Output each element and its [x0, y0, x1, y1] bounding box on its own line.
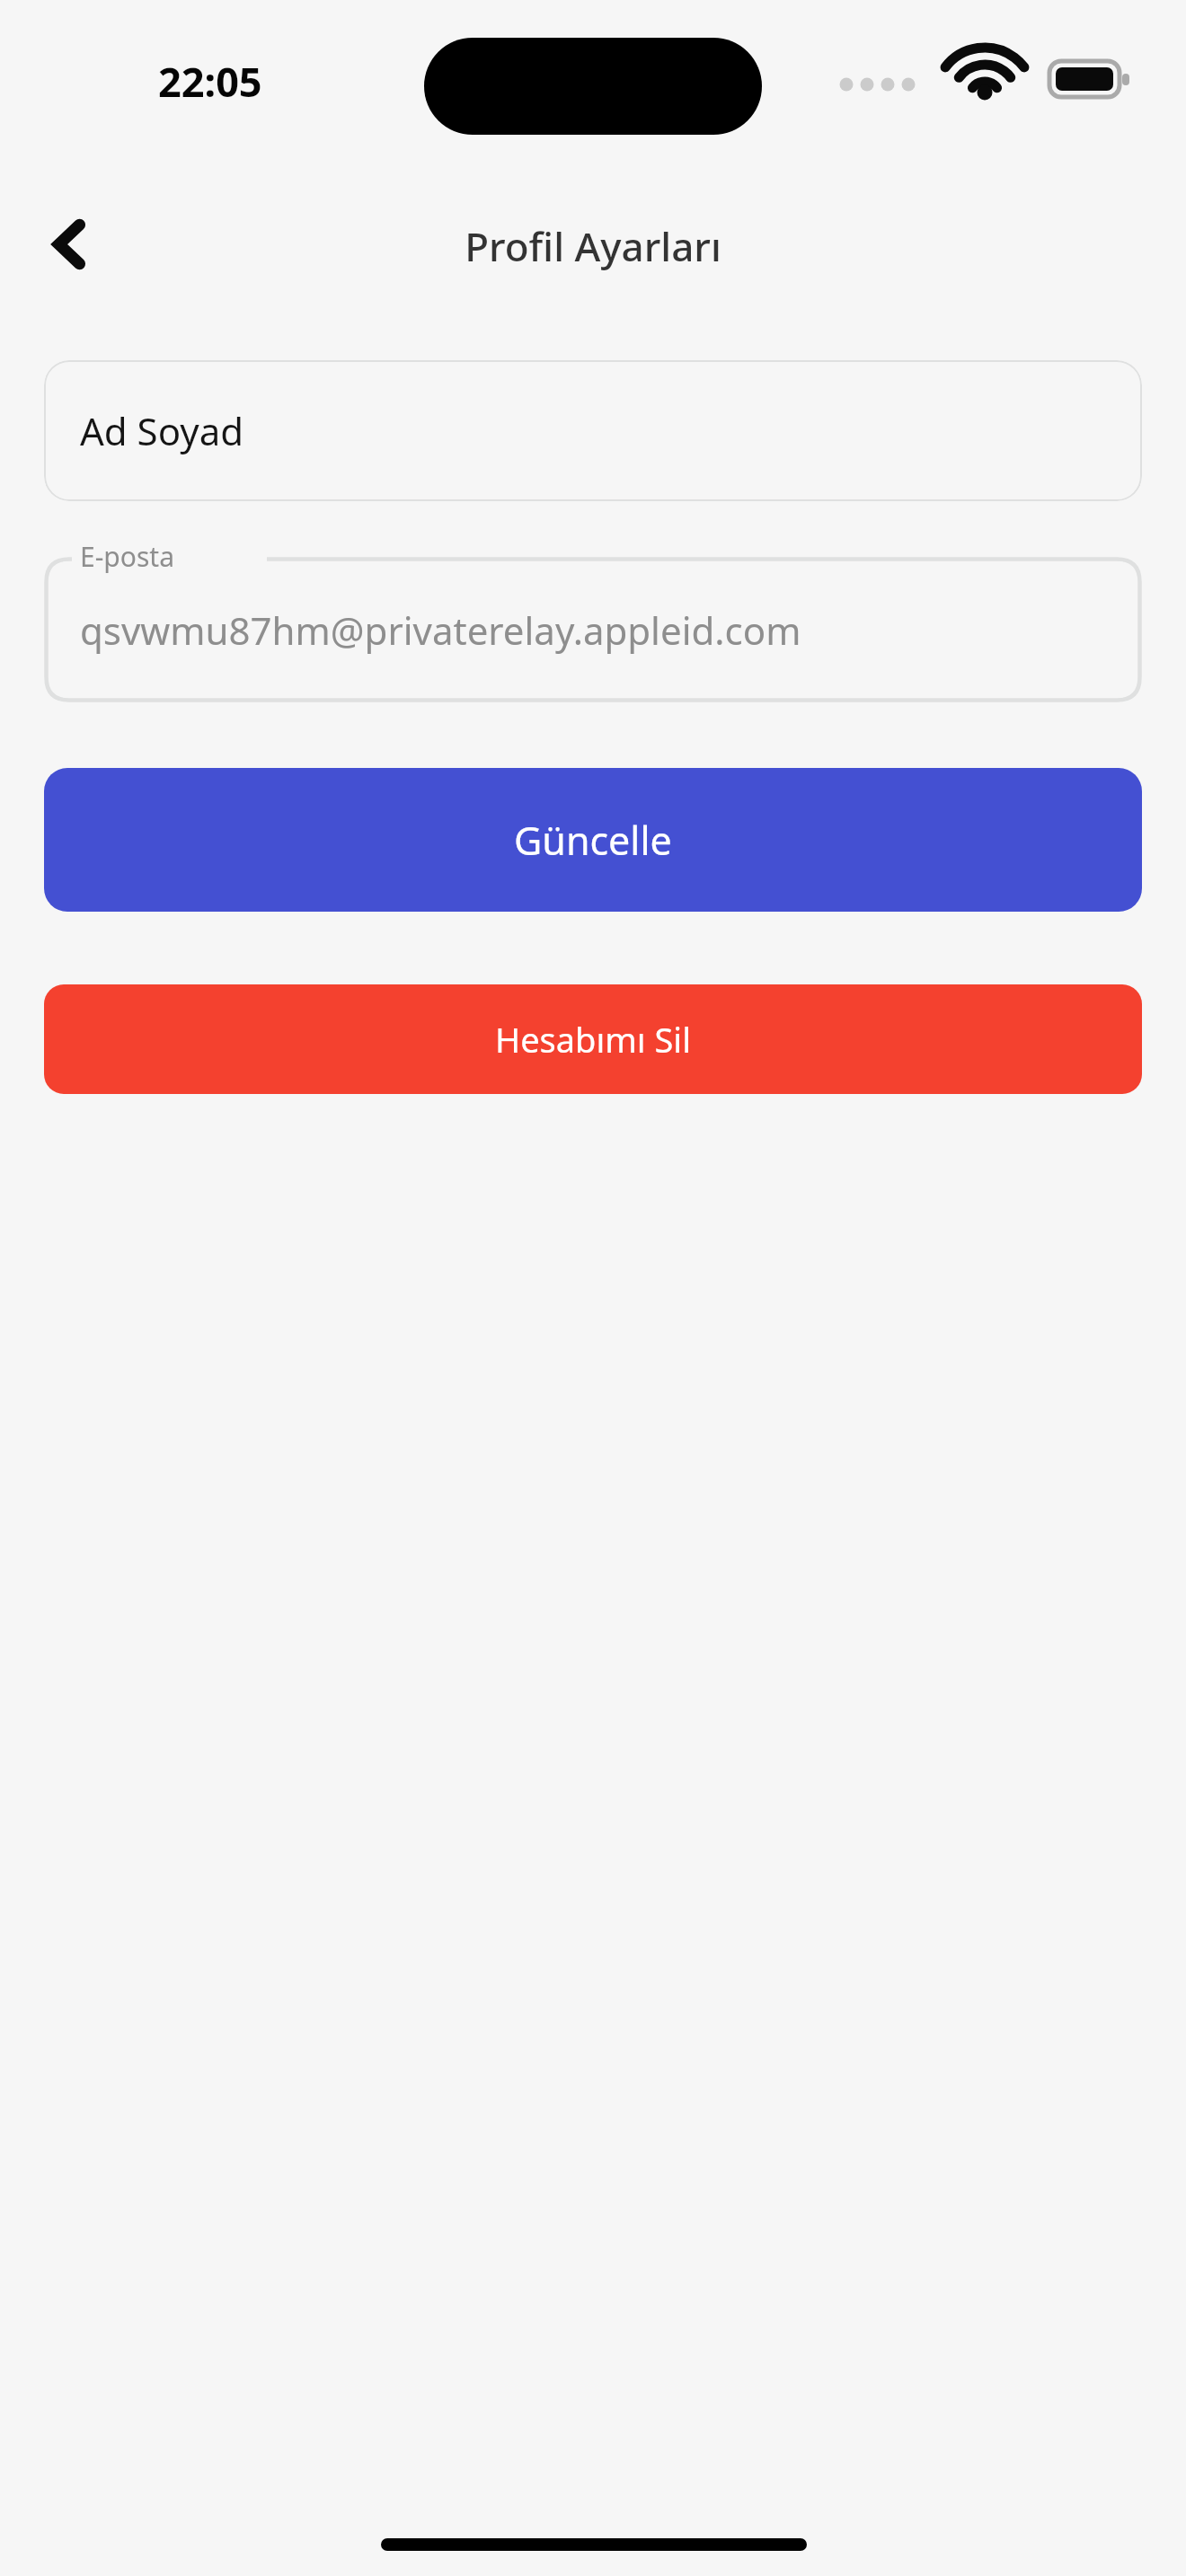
button[interactable]: Back	[20, 194, 120, 295]
staticText: 22:05	[158, 54, 262, 109]
staticText: Güncelle	[514, 814, 672, 867]
staticText: Profil Ayarları	[465, 219, 721, 273]
staticText: qsvwmu87hm@privaterelay.appleid.com	[80, 604, 801, 656]
button[interactable]: Ad Soyad	[44, 360, 1142, 501]
staticText: E-posta	[80, 538, 174, 575]
staticText: Hesabımı Sil	[495, 1016, 691, 1063]
button[interactable]: Hesabımı Sil	[44, 984, 1142, 1094]
button[interactable]: Güncelle	[44, 768, 1142, 912]
staticText: Ad Soyad	[80, 405, 244, 456]
button[interactable]: qsvwmu87hm@privaterelay.appleid.com	[44, 557, 1142, 702]
